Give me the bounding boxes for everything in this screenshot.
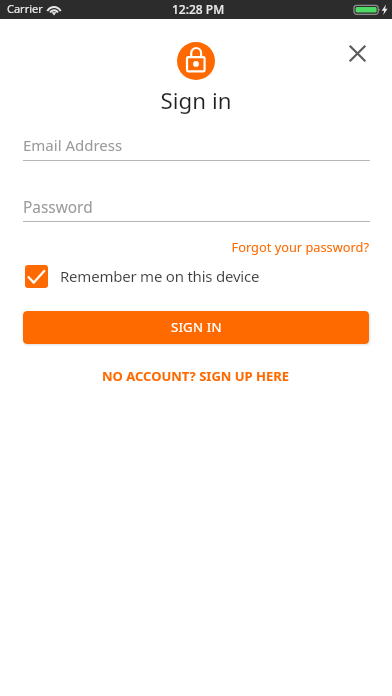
button[interactable]: Close — [339, 35, 375, 71]
button[interactable]: Remember me on this device — [25, 265, 260, 288]
staticText: Sign in — [0, 85, 392, 115]
staticText: SIGN IN — [171, 318, 222, 336]
button[interactable]: SIGN IN — [23, 311, 369, 344]
staticText: Carrier — [7, 1, 43, 16]
button[interactable]: Forgot your password? — [23, 238, 369, 255]
staticText: Email Address — [23, 135, 123, 155]
staticText: Password — [23, 197, 93, 218]
staticText: Remember me on this device — [60, 266, 260, 286]
staticText: 12:28 PM — [172, 1, 225, 17]
button[interactable]: NO ACCOUNT? SIGN UP HERE — [102, 367, 290, 385]
